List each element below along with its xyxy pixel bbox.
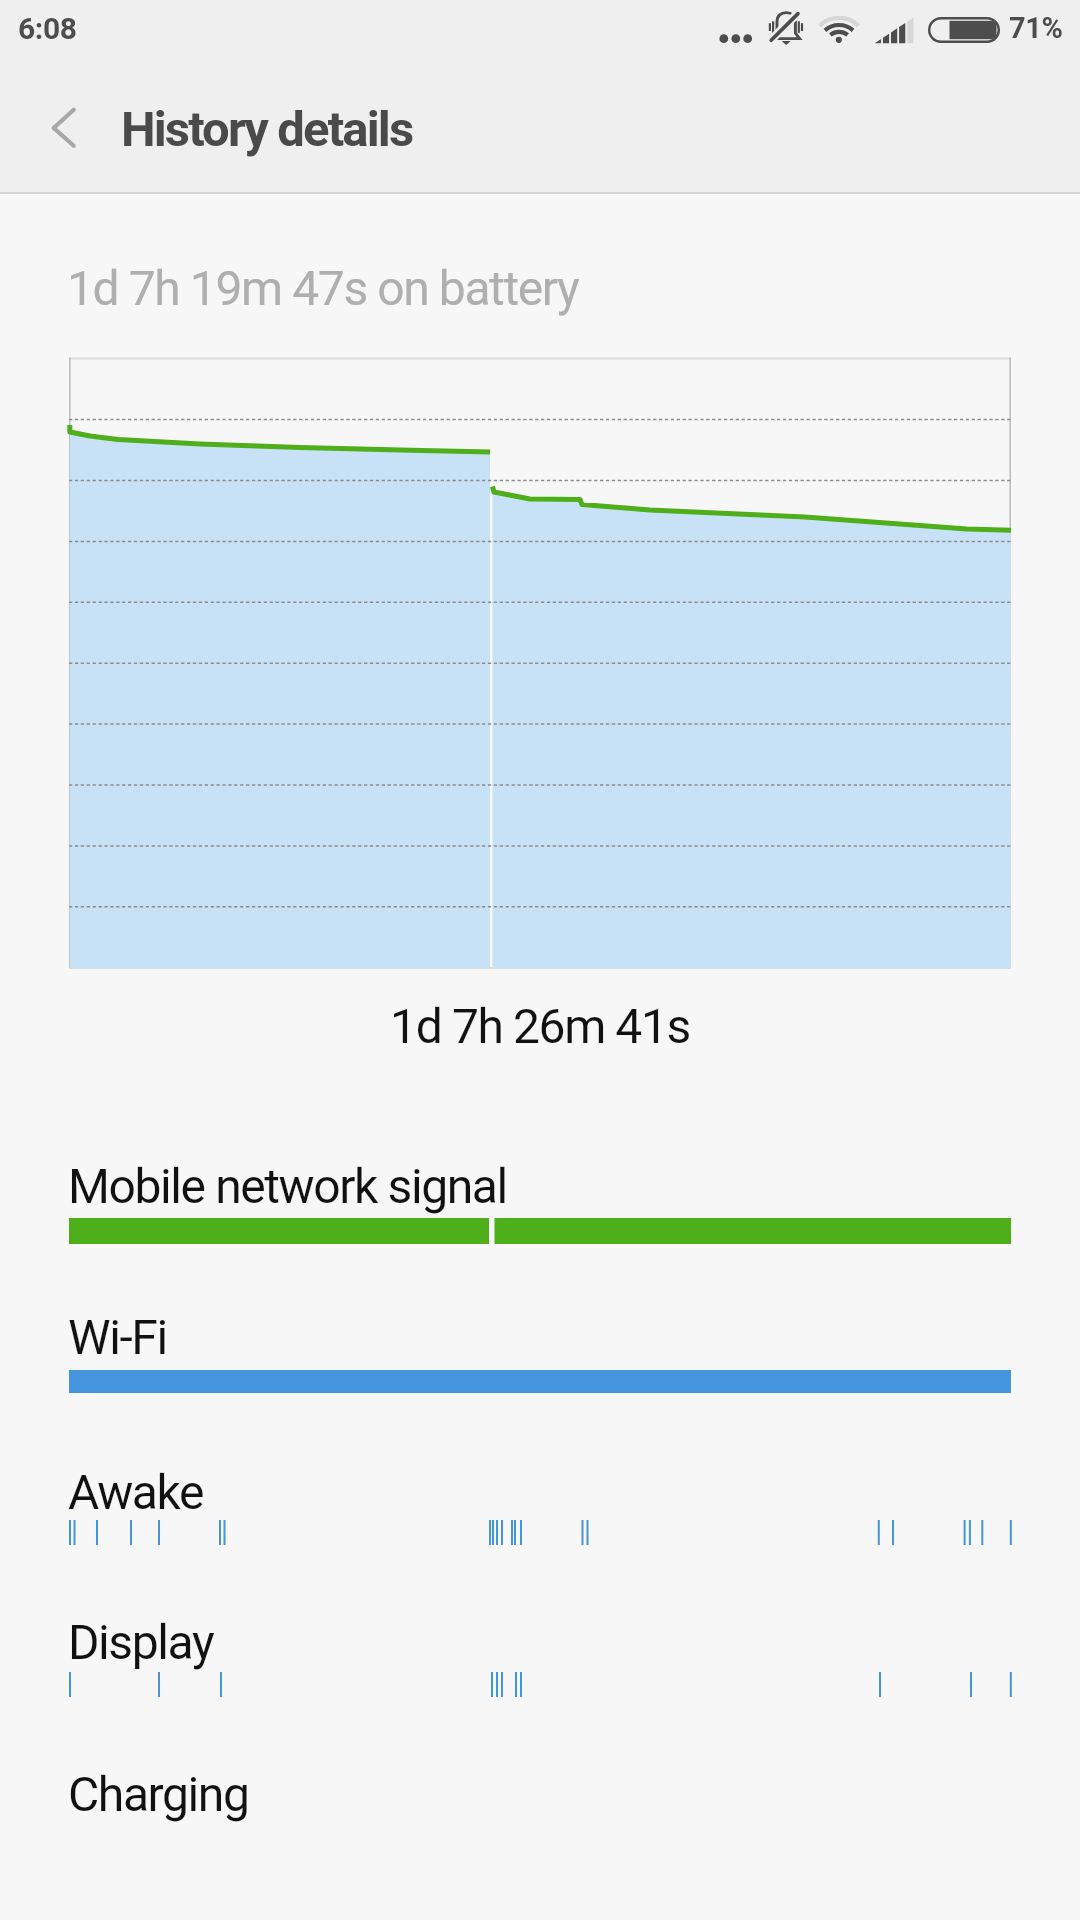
staticText: 6:08 xyxy=(18,11,77,46)
staticText: Mobile network signal xyxy=(68,1158,507,1214)
staticText: 1d 7h 26m 41s xyxy=(69,998,1011,1054)
staticText: 1d 7h 19m 47s on battery xyxy=(67,260,579,316)
button[interactable]: Back xyxy=(30,91,102,163)
staticText: Display xyxy=(68,1614,214,1670)
staticText: Wi-Fi xyxy=(68,1309,167,1365)
staticText: Awake xyxy=(68,1464,204,1520)
staticText: History details xyxy=(121,101,413,158)
staticText: 71% xyxy=(1009,11,1063,45)
staticText: Charging xyxy=(68,1766,249,1822)
